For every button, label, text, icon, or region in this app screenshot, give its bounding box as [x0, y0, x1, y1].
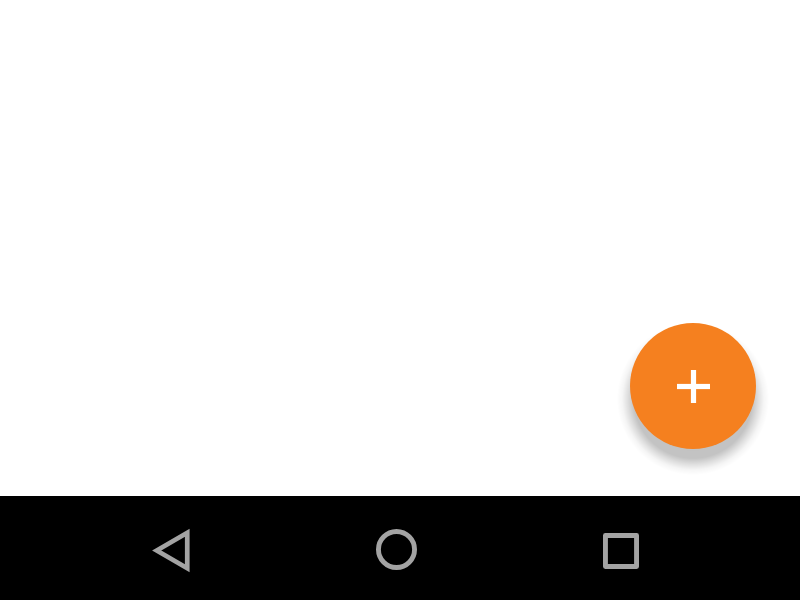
button[interactable]: Back [116, 504, 228, 596]
button[interactable]: Home [340, 503, 452, 595]
button[interactable]: Recent apps [565, 505, 677, 597]
button[interactable]: Add [630, 323, 756, 449]
